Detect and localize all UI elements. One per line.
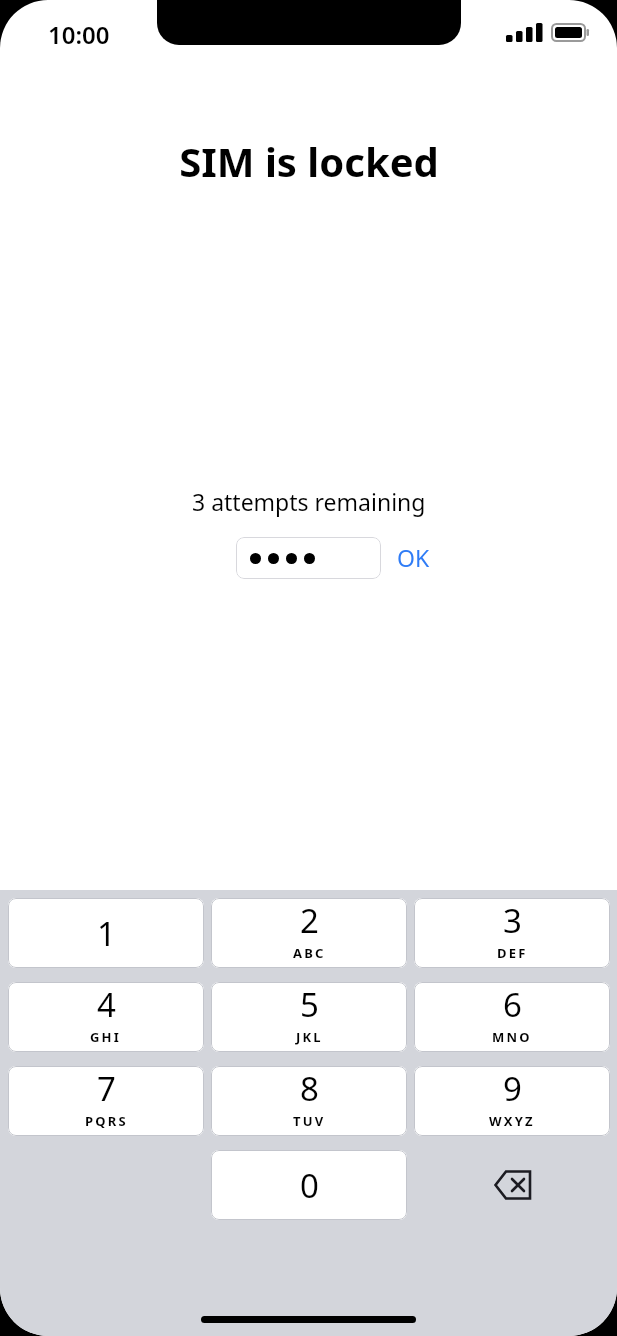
button[interactable]: OK — [393, 536, 434, 579]
button[interactable]: 0 — [211, 1150, 407, 1220]
staticText: PQRS — [85, 1112, 128, 1130]
staticText: 5 — [300, 982, 319, 1027]
button[interactable]: 6 — [414, 982, 610, 1052]
button[interactable]: 1 — [8, 898, 204, 968]
staticText: 10:00 — [48, 18, 110, 51]
staticText: TUV — [293, 1112, 326, 1130]
staticText: OK — [397, 542, 430, 573]
staticText: 6 — [503, 982, 522, 1027]
button[interactable]: 9 — [414, 1066, 610, 1136]
staticText: 9 — [503, 1066, 522, 1111]
staticText: 8 — [300, 1066, 319, 1111]
button[interactable]: 7 — [8, 1066, 204, 1136]
staticText: 0 — [300, 1163, 319, 1208]
staticText: 4 — [97, 982, 116, 1027]
button[interactable]: 5 — [211, 982, 407, 1052]
button[interactable]: 3 — [414, 898, 610, 968]
staticText: SIM is locked — [179, 134, 439, 188]
button[interactable]: 8 — [211, 1066, 407, 1136]
button[interactable] — [236, 537, 381, 579]
staticText: GHI — [90, 1028, 122, 1046]
staticText: 1 — [97, 911, 116, 956]
button[interactable]: 4 — [8, 982, 204, 1052]
staticText: ABC — [293, 944, 326, 962]
button[interactable]: 2 — [211, 898, 407, 968]
staticText: DEF — [497, 944, 528, 962]
staticText: WXYZ — [489, 1112, 535, 1130]
staticText: JKL — [296, 1028, 323, 1046]
staticText: 3 — [503, 898, 522, 943]
staticText: MNO — [492, 1028, 532, 1046]
staticText: 3 attempts remaining — [192, 486, 426, 517]
button[interactable]: Delete — [470, 1150, 558, 1220]
staticText: 7 — [97, 1066, 116, 1111]
staticText: 2 — [300, 898, 319, 943]
